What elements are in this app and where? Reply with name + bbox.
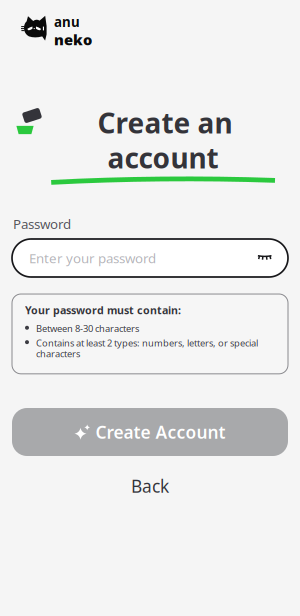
staticText: Your password must contain: [25,303,181,317]
staticText: Contains at least 2 types: numbers, lett… [36,337,258,360]
staticText: anu [54,13,80,31]
staticText: Create Account [95,420,225,443]
button[interactable]: Create Account [12,408,288,456]
button[interactable]: Show password [253,246,277,270]
staticText: neko [54,30,92,49]
staticText: Enter your password [29,249,156,267]
staticText: Create an [97,104,232,141]
staticText: account [107,139,218,176]
staticText: Back [131,474,169,497]
staticText: Between 8-30 characters [36,322,139,335]
staticText: Password [13,215,71,233]
button[interactable]: Back [105,473,195,499]
